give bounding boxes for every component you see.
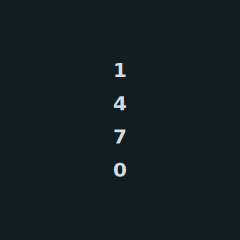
staticText: 1	[113, 58, 127, 82]
staticText: 4	[113, 92, 127, 115]
staticText: 7	[113, 125, 127, 148]
staticText: 0	[113, 158, 127, 182]
